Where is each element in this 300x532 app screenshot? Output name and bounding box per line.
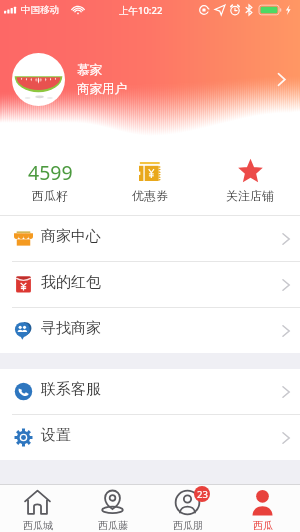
button[interactable]: 联系客服: [0, 369, 300, 414]
button[interactable]: 关注店铺: [200, 147, 300, 215]
staticText: 西瓜朋: [173, 519, 203, 532]
staticText: 设置: [41, 426, 71, 445]
staticText: 西瓜: [253, 519, 273, 532]
staticText: 商家用户: [77, 81, 127, 97]
staticText: 23: [197, 488, 208, 501]
staticText: 西瓜藤: [98, 519, 128, 532]
staticText: 中国移动: [21, 4, 59, 16]
staticText: 西瓜城: [23, 519, 53, 532]
button[interactable]: 西瓜城: [0, 485, 75, 532]
staticText: 优惠券: [132, 188, 168, 203]
button[interactable]: 商家中心: [0, 216, 300, 261]
button[interactable]: 4599: [0, 147, 100, 215]
staticText: 慕家: [77, 62, 102, 78]
button[interactable]: 优惠券: [100, 147, 200, 215]
staticText: 西瓜籽: [32, 188, 68, 203]
staticText: 寻找商家: [41, 319, 101, 338]
button[interactable]: 慕家: [0, 48, 300, 110]
button[interactable]: 23: [150, 485, 225, 532]
button[interactable]: 寻找商家: [0, 308, 300, 353]
button[interactable]: 设置: [0, 415, 300, 460]
staticText: 关注店铺: [226, 188, 274, 203]
staticText: 上午10:22: [119, 4, 163, 17]
button[interactable]: 西瓜藤: [75, 485, 150, 532]
button[interactable]: 我的红包: [0, 262, 300, 307]
button[interactable]: 西瓜: [225, 485, 300, 532]
staticText: 我的红包: [41, 273, 101, 292]
staticText: 4599: [28, 159, 73, 181]
staticText: 商家中心: [41, 227, 101, 246]
staticText: 联系客服: [41, 380, 101, 399]
